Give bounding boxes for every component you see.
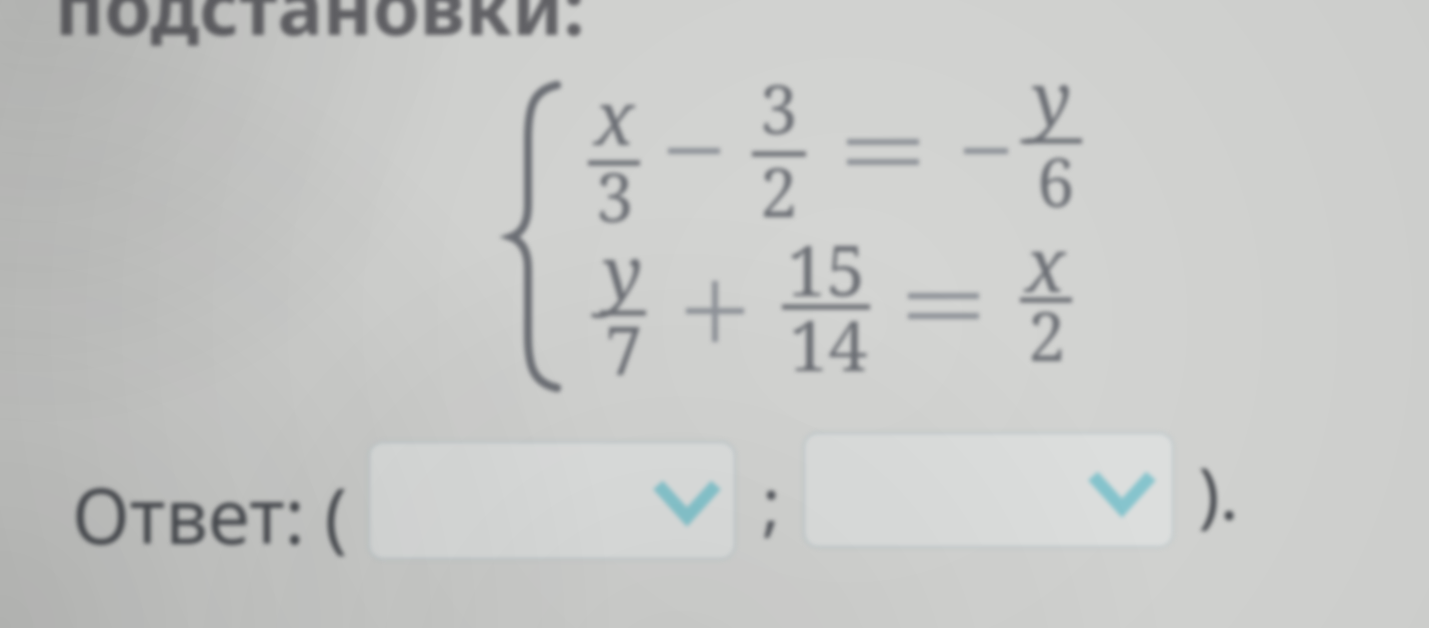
staticText: 3 — [596, 150, 634, 241]
staticText: Ответ: ( — [72, 463, 348, 567]
staticText: x — [1025, 213, 1066, 314]
staticText: 2 — [760, 145, 798, 236]
button[interactable] — [804, 433, 1173, 547]
button[interactable] — [369, 442, 735, 559]
staticText: 6 — [1037, 135, 1075, 226]
staticText: 7 — [605, 303, 643, 394]
staticText: y — [1032, 47, 1072, 148]
staticText: подстановки: — [55, 0, 585, 50]
staticText: 2 — [1028, 289, 1066, 380]
staticText: 14 — [789, 296, 868, 391]
staticText: ). — [1198, 443, 1239, 541]
staticText: 15 — [787, 221, 866, 316]
staticText: x — [594, 66, 635, 167]
staticText: ; — [762, 453, 781, 548]
staticText: 3 — [760, 62, 798, 153]
staticText: y — [603, 221, 643, 322]
